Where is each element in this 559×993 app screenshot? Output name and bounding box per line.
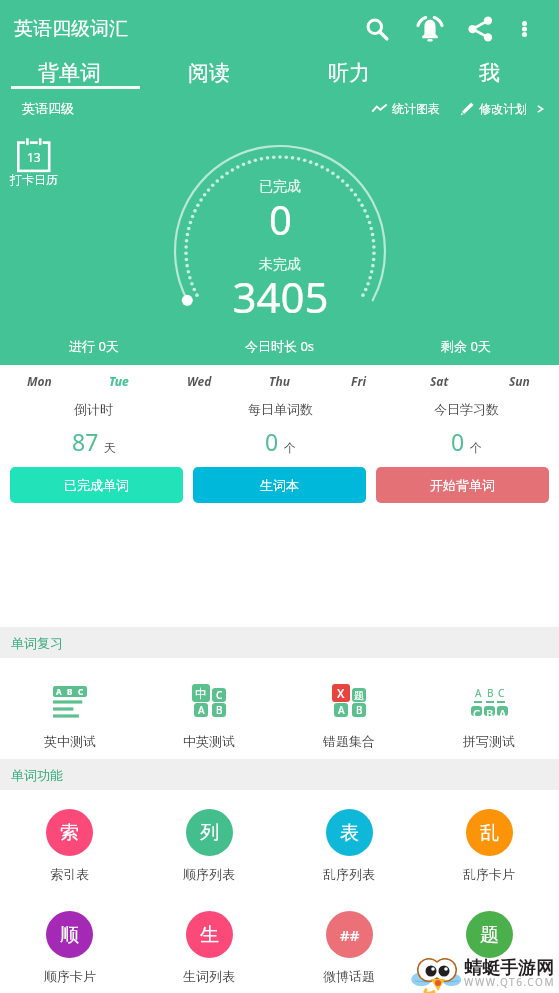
- staticText: 英语四级: [22, 100, 74, 116]
- staticText: A: [499, 706, 507, 716]
- staticText: C: [473, 706, 480, 716]
- staticText: Thu: [269, 373, 290, 389]
- staticText: 个: [284, 440, 296, 455]
- button[interactable]: 听力: [279, 52, 419, 92]
- button[interactable]: Search: [354, 3, 400, 55]
- staticText: 中英测试: [183, 733, 235, 749]
- staticText: Fri: [351, 373, 367, 389]
- button[interactable]: Tue: [79, 365, 159, 397]
- staticText: 生词列表: [183, 968, 235, 984]
- button[interactable]: X: [279, 684, 419, 749]
- button[interactable]: 索: [0, 809, 139, 882]
- staticText: Wed: [187, 373, 212, 389]
- staticText: 0: [265, 426, 279, 457]
- staticText: 0: [451, 426, 465, 457]
- staticText: 单词功能: [11, 767, 63, 783]
- button[interactable]: 今日学习数: [373, 401, 559, 457]
- staticText: X: [337, 685, 345, 701]
- staticText: WWW.QT6.COM: [464, 975, 556, 989]
- button[interactable]: 顺: [0, 911, 139, 984]
- staticText: B: [486, 706, 494, 716]
- staticText: 进行 0天: [69, 337, 119, 355]
- staticText: 个: [470, 440, 482, 455]
- staticText: 乱序卡片: [463, 866, 515, 882]
- staticText: A: [338, 703, 345, 717]
- staticText: B: [67, 686, 73, 697]
- button[interactable]: ##: [279, 911, 419, 984]
- button[interactable]: Notifications: [407, 3, 453, 55]
- staticText: 倒计时: [74, 401, 113, 417]
- staticText: 英中测试: [44, 733, 96, 749]
- button[interactable]: 统计图表: [370, 101, 442, 116]
- staticText: C: [216, 688, 223, 702]
- staticText: 天: [104, 440, 116, 455]
- staticText: 中: [195, 686, 207, 701]
- staticText: 乱序列表: [323, 866, 375, 882]
- button[interactable]: Wed: [159, 365, 239, 397]
- staticText: 顺序列表: [183, 866, 235, 882]
- button[interactable]: 13: [10, 134, 58, 187]
- staticText: A: [56, 686, 62, 697]
- staticText: C: [78, 686, 84, 697]
- button[interactable]: 背单词: [0, 52, 139, 92]
- staticText: Mon: [27, 373, 52, 389]
- button[interactable]: More options: [501, 3, 547, 55]
- button[interactable]: 每日单词数: [187, 401, 373, 457]
- staticText: A: [475, 686, 482, 700]
- staticText: 我: [479, 60, 500, 86]
- staticText: 表: [340, 821, 359, 845]
- staticText: Sun: [509, 373, 530, 389]
- staticText: 已完成单词: [64, 477, 129, 493]
- staticText: 微博话题: [323, 968, 375, 984]
- button[interactable]: 生: [139, 911, 279, 984]
- staticText: 顺: [60, 923, 79, 947]
- staticText: 打卡日历: [10, 172, 58, 187]
- button[interactable]: A: [0, 684, 139, 749]
- staticText: 每日单词数: [248, 401, 313, 417]
- staticText: 背单词: [38, 60, 101, 86]
- staticText: 修改计划: [479, 101, 527, 116]
- staticText: 听力: [328, 60, 370, 86]
- button[interactable]: Share: [457, 3, 503, 55]
- staticText: 拼写测试: [463, 733, 515, 749]
- button[interactable]: 列: [139, 809, 279, 882]
- staticText: 英语四级词汇: [14, 17, 128, 41]
- staticText: C: [498, 686, 505, 700]
- staticText: 0: [269, 192, 292, 246]
- staticText: 今日学习数: [434, 401, 499, 417]
- staticText: 13: [27, 149, 41, 165]
- staticText: 已完成: [259, 178, 301, 196]
- button[interactable]: Mon: [0, 365, 79, 397]
- staticText: 错题集合: [323, 733, 375, 749]
- button[interactable]: 生词本: [193, 467, 366, 503]
- staticText: 题: [480, 923, 499, 947]
- staticText: ##: [340, 925, 360, 945]
- button[interactable]: 表: [279, 809, 419, 882]
- button[interactable]: 修改计划: [458, 101, 547, 116]
- button[interactable]: Thu: [239, 365, 319, 397]
- staticText: 生词本: [260, 477, 299, 493]
- button[interactable]: 阅读: [139, 52, 279, 92]
- staticText: 索引表: [50, 866, 89, 882]
- button[interactable]: Sun: [479, 365, 559, 397]
- button[interactable]: 倒计时: [0, 401, 187, 457]
- staticText: 开始背单词: [430, 477, 495, 493]
- button[interactable]: 中: [139, 684, 279, 749]
- button[interactable]: A: [419, 684, 559, 749]
- staticText: 单词复习: [11, 635, 63, 651]
- staticText: 87: [72, 426, 99, 457]
- button[interactable]: Sat: [399, 365, 479, 397]
- button[interactable]: 题: [419, 911, 559, 986]
- staticText: 统计图表: [392, 101, 440, 116]
- staticText: 生: [200, 923, 219, 947]
- button[interactable]: 我: [419, 52, 559, 92]
- staticText: 顺序卡片: [44, 968, 96, 984]
- staticText: Tue: [109, 373, 129, 389]
- staticText: B: [487, 686, 494, 700]
- button[interactable]: 乱: [419, 809, 559, 882]
- button[interactable]: Fri: [319, 365, 399, 397]
- button[interactable]: 开始背单词: [376, 467, 549, 503]
- staticText: B: [356, 703, 363, 717]
- staticText: 阅读: [188, 60, 230, 86]
- button[interactable]: 已完成单词: [10, 467, 183, 503]
